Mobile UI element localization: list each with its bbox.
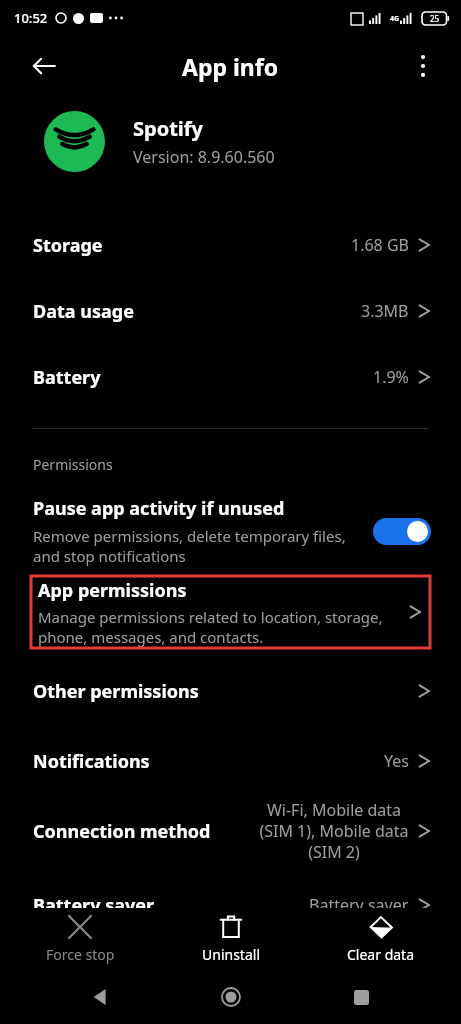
button[interactable]: Connection method — [0, 796, 461, 866]
staticText: Data usage — [33, 299, 134, 324]
staticText: Uninstall — [202, 945, 260, 964]
staticText: Pause app activity if unused — [33, 496, 285, 521]
button[interactable]: Pause app activity if unused — [0, 492, 461, 570]
button[interactable]: App permissions — [31, 576, 430, 648]
staticText: Clear data — [347, 945, 415, 964]
staticText: Yes — [384, 750, 409, 772]
button[interactable]: Spotify — [0, 96, 461, 186]
button[interactable]: Home — [201, 970, 261, 1024]
staticText: 1.9% — [373, 366, 409, 388]
button[interactable]: More options — [403, 46, 443, 86]
staticText: Manage permissions related to location, … — [38, 607, 397, 647]
button[interactable]: Clear data — [311, 912, 451, 966]
button[interactable]: Data usage — [0, 278, 461, 344]
button[interactable]: Storage — [0, 212, 461, 278]
button[interactable]: Notifications — [0, 728, 461, 794]
staticText: Notifications — [33, 749, 150, 774]
button[interactable]: Back — [22, 44, 66, 88]
staticText: Remove permissions, delete temporary fil… — [33, 526, 357, 566]
staticText: Wi-Fi, Mobile data (SIM 1), Mobile data … — [259, 799, 409, 863]
staticText: Version: 8.9.60.560 — [133, 146, 275, 168]
button[interactable]: Force stop — [10, 912, 150, 966]
button[interactable]: Recents — [331, 970, 391, 1024]
staticText: Permissions — [33, 455, 113, 474]
button[interactable]: Other permissions — [0, 662, 461, 720]
staticText: 10:52 — [14, 9, 48, 27]
staticText: Battery — [33, 365, 101, 390]
staticText: Battery saver — [309, 894, 409, 916]
button[interactable]: Battery — [0, 344, 461, 410]
staticText: Storage — [33, 233, 103, 258]
staticText: Other permissions — [33, 679, 199, 704]
button[interactable]: Battery saver — [0, 872, 461, 938]
staticText: 3.3MB — [361, 300, 409, 322]
staticText: 1.68 GB — [351, 234, 409, 256]
staticText: 4G — [390, 14, 400, 24]
staticText: App info — [182, 51, 279, 82]
staticText: Connection method — [33, 819, 211, 844]
staticText: 25 — [430, 13, 440, 24]
staticText: App permissions — [38, 578, 187, 603]
staticText: Battery saver — [33, 893, 155, 918]
staticText: Spotify — [133, 115, 203, 142]
button[interactable]: Uninstall — [161, 912, 301, 966]
staticText: Force stop — [46, 945, 115, 964]
button[interactable]: Back — [70, 970, 130, 1024]
